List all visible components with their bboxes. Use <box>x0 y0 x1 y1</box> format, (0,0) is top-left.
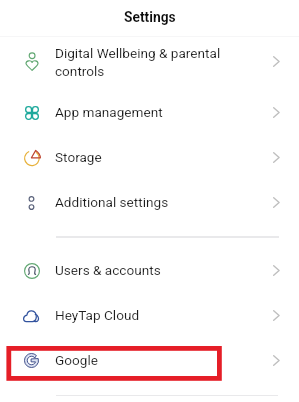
button[interactable]: App management <box>0 90 299 135</box>
other: Open <box>273 355 280 366</box>
staticText: Digital Wellbeing & parental controls <box>55 45 253 79</box>
staticText: Storage <box>55 149 253 165</box>
other: Open <box>273 265 280 276</box>
other: Open <box>273 197 280 208</box>
staticText: Google <box>55 352 253 368</box>
staticText: HeyTap Cloud <box>55 307 253 323</box>
button[interactable]: Google <box>0 338 299 383</box>
staticText: App management <box>55 104 253 120</box>
button[interactable]: Additional settings <box>0 180 299 225</box>
other: Open <box>273 152 280 163</box>
button[interactable]: Users & accounts <box>0 248 299 293</box>
staticText: Settings <box>124 9 176 25</box>
other: Open <box>273 56 280 67</box>
other: Open <box>273 310 280 321</box>
button[interactable]: Storage <box>0 135 299 180</box>
other: Open <box>273 107 280 118</box>
other: Highlighted <box>0 338 299 383</box>
button[interactable]: HeyTap Cloud <box>0 293 299 338</box>
staticText: Additional settings <box>55 194 253 210</box>
button[interactable]: Digital Wellbeing & parental controls <box>0 37 299 90</box>
staticText: Users & accounts <box>55 262 253 278</box>
